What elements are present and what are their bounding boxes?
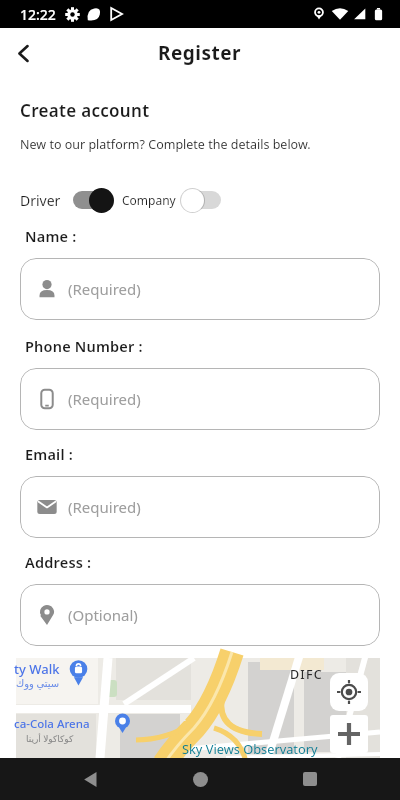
staticText: New to our platform? Complete the detail… xyxy=(20,136,311,153)
button[interactable]: (Required) xyxy=(20,258,380,320)
staticText: Driver xyxy=(20,191,61,210)
staticText: Register xyxy=(158,40,242,66)
button[interactable] xyxy=(180,187,222,213)
staticText: ca-Cola Arena xyxy=(14,716,90,732)
staticText: (Optional) xyxy=(68,605,138,625)
staticText: 12:22 xyxy=(20,5,56,24)
button[interactable] xyxy=(330,715,368,753)
button[interactable]: (Required) xyxy=(20,476,380,538)
staticText: Address : xyxy=(25,552,92,572)
staticText: DIFC xyxy=(290,666,323,683)
staticText: ty Walk xyxy=(14,660,60,678)
staticText: كوكاكولا أرينا xyxy=(26,732,74,744)
button[interactable] xyxy=(72,758,108,800)
button[interactable]: (Required) xyxy=(20,368,380,430)
button[interactable]: ty Walk xyxy=(16,658,380,758)
button[interactable]: (Optional) xyxy=(20,584,380,646)
staticText: Name : xyxy=(25,226,77,246)
staticText: Phone Number : xyxy=(25,336,143,356)
staticText: (Required) xyxy=(68,497,141,517)
staticText: (Required) xyxy=(68,389,141,409)
staticText: Sky Views Observatory xyxy=(182,740,318,757)
staticText: Create account xyxy=(20,99,150,122)
button[interactable] xyxy=(292,758,328,800)
button[interactable] xyxy=(6,35,42,71)
staticText: Email : xyxy=(25,444,73,464)
staticText: سيتي ووك xyxy=(16,676,60,690)
staticText: (Required) xyxy=(68,279,141,299)
button[interactable] xyxy=(182,758,218,800)
staticText: Company xyxy=(122,192,176,208)
button[interactable] xyxy=(330,673,368,711)
button[interactable] xyxy=(72,187,114,213)
